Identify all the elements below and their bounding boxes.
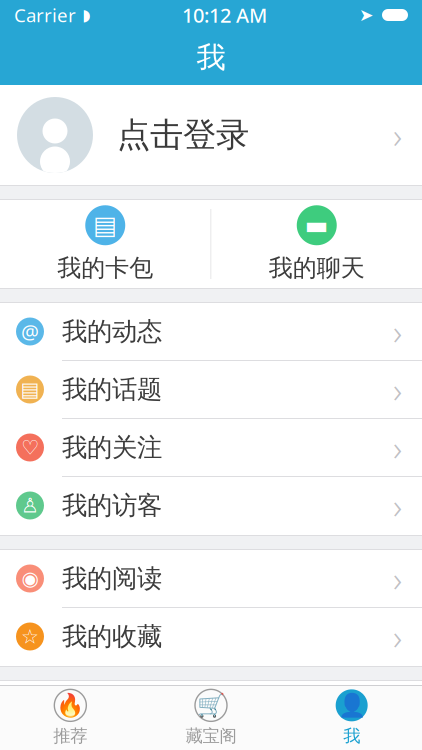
button[interactable]: ▬ bbox=[211, 200, 422, 288]
staticText: 点击登录 bbox=[117, 114, 249, 155]
staticText: ☆ bbox=[21, 625, 39, 648]
staticText: › bbox=[393, 112, 402, 158]
staticText: 10:12 AM bbox=[182, 2, 267, 28]
button[interactable]: ◉ bbox=[0, 550, 422, 608]
button[interactable]: 点击登录 bbox=[0, 85, 422, 185]
staticText: ▤ bbox=[20, 378, 39, 401]
staticText: 我的发布 bbox=[62, 694, 162, 725]
staticText: › bbox=[393, 308, 402, 354]
staticText: ▬ bbox=[305, 211, 329, 240]
button[interactable]: ♡ bbox=[0, 419, 422, 477]
staticText: ♡ bbox=[21, 436, 39, 459]
staticText: 🛒 bbox=[197, 692, 225, 718]
staticText: 我的聊天 bbox=[269, 253, 365, 283]
button[interactable]: ✎ bbox=[0, 681, 422, 739]
staticText: ◗ bbox=[82, 6, 90, 24]
staticText: 我的访客 bbox=[62, 490, 162, 521]
staticText: 🔥 bbox=[56, 692, 84, 718]
staticText: › bbox=[393, 482, 402, 528]
staticText: Carrier bbox=[14, 3, 76, 27]
staticText: 我的卡包 bbox=[57, 253, 153, 283]
staticText: @ bbox=[21, 318, 39, 345]
staticText: 我的话题 bbox=[62, 374, 162, 405]
button[interactable]: ▤ bbox=[0, 200, 210, 288]
staticText: › bbox=[393, 613, 402, 659]
button[interactable]: 👤 bbox=[281, 686, 422, 750]
button[interactable]: ☆ bbox=[0, 608, 422, 666]
staticText: 👤 bbox=[338, 692, 366, 718]
staticText: › bbox=[393, 366, 402, 412]
staticText: 我 bbox=[343, 725, 360, 747]
button[interactable]: @ bbox=[0, 303, 422, 361]
button[interactable]: ▤ bbox=[0, 361, 422, 419]
staticText: ▤ bbox=[93, 211, 117, 240]
button[interactable]: 🔥 bbox=[0, 686, 141, 750]
staticText: ➤ bbox=[359, 5, 374, 25]
staticText: ◉ bbox=[21, 567, 38, 590]
staticText: › bbox=[393, 424, 402, 470]
staticText: 推荐 bbox=[53, 725, 87, 747]
staticText: 我 bbox=[196, 39, 225, 75]
staticText: ♙ bbox=[21, 494, 39, 517]
staticText: 我的关注 bbox=[62, 432, 162, 463]
staticText: 我的动态 bbox=[62, 316, 162, 347]
button[interactable]: ♙ bbox=[0, 477, 422, 535]
staticText: › bbox=[393, 555, 402, 601]
staticText: 我的收藏 bbox=[62, 621, 162, 652]
button[interactable]: 🛒 bbox=[141, 686, 281, 750]
staticText: 藏宝阁 bbox=[185, 725, 236, 747]
staticText: 我的阅读 bbox=[62, 563, 162, 594]
